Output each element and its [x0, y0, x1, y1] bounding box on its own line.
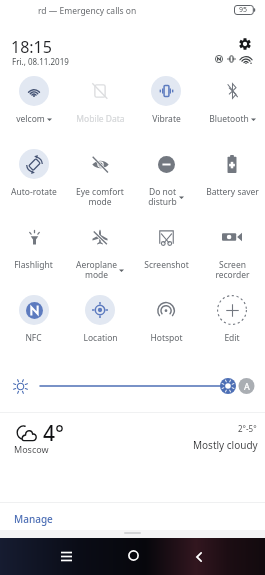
staticText: Moscow [14, 443, 49, 455]
staticText: Aeroplane mode [76, 259, 117, 281]
button[interactable]: Aeroplane mode [67, 222, 133, 295]
button[interactable]: Brightness [0, 374, 265, 398]
button[interactable]: Hotspot [133, 295, 199, 368]
button[interactable]: Location [67, 295, 133, 368]
button[interactable]: Home [119, 538, 147, 575]
button[interactable]: Bluetooth [199, 76, 265, 149]
staticText: Mostly cloudy [193, 438, 258, 452]
button[interactable]: Recents [52, 538, 80, 575]
staticText: Fri., 08.11.2019 [12, 56, 69, 67]
staticText: Battery saver [206, 186, 259, 198]
button[interactable]: Back [185, 538, 213, 575]
button[interactable]: Auto-rotate [0, 149, 67, 222]
staticText: Manage [14, 512, 53, 526]
staticText: Hotspot [150, 332, 183, 344]
staticText: 95 [239, 5, 248, 15]
button[interactable]: Battery saver [199, 149, 265, 222]
staticText: velcom [16, 113, 45, 125]
button[interactable]: Screen recorder [199, 222, 265, 295]
staticText: Auto-rotate [11, 186, 57, 198]
button[interactable]: 4° [0, 418, 265, 468]
button[interactable]: NFC [0, 295, 67, 368]
staticText: Do not disturb [148, 186, 177, 208]
staticText: Screenshot [144, 259, 189, 271]
staticText: Location [83, 332, 118, 344]
staticText: Eye comfort mode [76, 186, 124, 208]
staticText: Flashlight [14, 259, 53, 271]
staticText: rd — Emergency calls on [38, 5, 137, 17]
button[interactable]: Edit [199, 295, 265, 368]
staticText: Screen recorder [215, 259, 250, 281]
staticText: 4° [43, 419, 64, 448]
staticText: A [244, 380, 250, 392]
button[interactable]: Screenshot [133, 222, 199, 295]
staticText: Mobile Data [76, 113, 125, 125]
button[interactable]: Settings [238, 37, 251, 50]
staticText: Vibrate [152, 113, 181, 125]
button[interactable]: Vibrate [133, 76, 199, 149]
button[interactable]: Do not disturb [133, 149, 199, 222]
button[interactable]: Flashlight [0, 222, 67, 295]
button[interactable]: Eye comfort mode [67, 149, 133, 222]
button[interactable]: Mobile Data [67, 76, 133, 149]
staticText: Edit [224, 332, 240, 344]
staticText: Bluetooth [209, 113, 249, 125]
staticText: 2°-5° [238, 423, 257, 434]
button[interactable]: Manage [12, 510, 55, 528]
staticText: 18:15 [11, 36, 52, 58]
button[interactable]: velcom [0, 76, 67, 149]
staticText: NFC [25, 332, 42, 344]
